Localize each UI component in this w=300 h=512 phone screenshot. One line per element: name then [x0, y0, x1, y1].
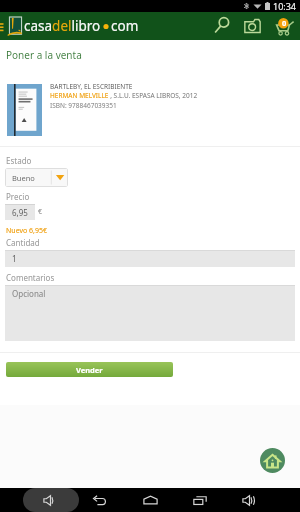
button[interactable]: Scan barcode with camera	[237, 12, 267, 40]
button[interactable]: Home	[135, 488, 165, 512]
button[interactable]: Search	[206, 12, 237, 40]
staticText: ISBN: 9788467039351	[50, 101, 117, 110]
staticText: HERMAN MELVILLE , S.L.U. ESPASA LIBROS, …	[50, 91, 198, 100]
staticText: Vender	[76, 365, 103, 375]
staticText: 1	[12, 253, 17, 264]
button[interactable]: 6,95	[5, 204, 35, 220]
staticText: casadellibro	[24, 17, 101, 35]
button[interactable]: Volume down	[35, 488, 65, 512]
staticText: 10:34	[273, 0, 297, 12]
button[interactable]: Volume up	[234, 488, 264, 512]
button[interactable]: Recent apps	[185, 488, 215, 512]
button[interactable]: 1	[5, 250, 295, 267]
staticText: Comentarios	[6, 272, 55, 283]
staticText: com	[111, 17, 139, 35]
staticText: Estado	[6, 155, 32, 166]
staticText: Poner a la venta	[6, 48, 82, 62]
button[interactable]: Open navigation menu	[0, 12, 8, 40]
staticText: 6,95	[12, 207, 28, 218]
button[interactable]: Bueno	[5, 168, 68, 187]
staticText: Precio	[6, 191, 30, 202]
staticText: Bueno	[12, 173, 35, 183]
staticText: Opcional	[12, 288, 46, 299]
button[interactable]: Home	[260, 448, 285, 473]
button[interactable]: Shopping cart, 0 items	[270, 12, 300, 40]
staticText: €	[38, 207, 43, 217]
button[interactable]: Back	[84, 488, 114, 512]
staticText: Nuevo 6,95€	[6, 226, 47, 236]
button[interactable]: Opcional	[5, 285, 295, 341]
staticText: Cantidad	[6, 237, 40, 248]
staticText: 0	[282, 18, 287, 28]
button[interactable]: Vender	[6, 362, 173, 377]
staticText: BARTLEBY, EL ESCRIBIENTE	[50, 82, 133, 91]
